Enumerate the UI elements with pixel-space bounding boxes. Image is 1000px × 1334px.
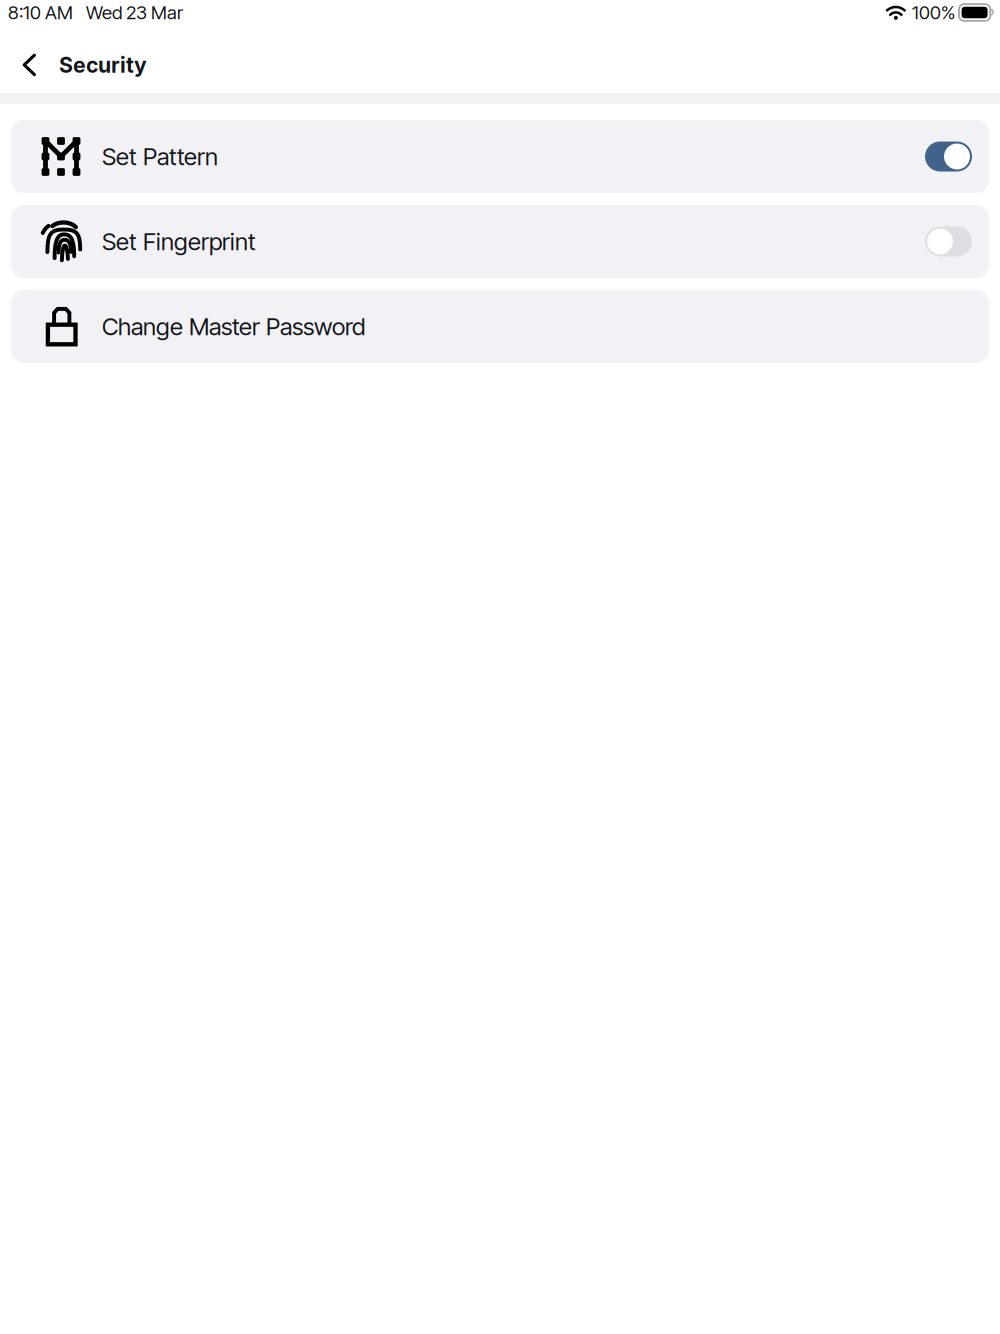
button[interactable]: Switch on bbox=[925, 141, 972, 171]
staticText: Change Master Password bbox=[102, 312, 365, 341]
staticText: 8:10 AM bbox=[8, 1, 73, 24]
button[interactable]: Back bbox=[9, 43, 49, 87]
staticText: 100% bbox=[912, 1, 955, 24]
staticText: Security bbox=[59, 52, 147, 78]
staticText: Set Pattern bbox=[102, 142, 218, 171]
button[interactable]: Change Master Password bbox=[11, 290, 989, 363]
staticText: Wed 23 Mar bbox=[86, 1, 183, 24]
staticText: Set Fingerprint bbox=[102, 227, 256, 256]
button[interactable]: Set Fingerprint bbox=[11, 205, 989, 278]
button[interactable]: Switch off bbox=[925, 226, 972, 256]
button[interactable]: Set Pattern bbox=[11, 120, 989, 193]
